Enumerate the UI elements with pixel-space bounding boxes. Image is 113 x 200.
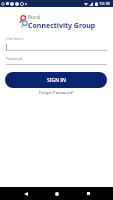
button[interactable]: Back bbox=[19, 187, 32, 200]
button[interactable]: Forgot Password? bbox=[37, 89, 76, 97]
staticText: Rural bbox=[28, 14, 41, 21]
staticText: SIGN IN bbox=[47, 77, 66, 84]
button[interactable]: Recent apps bbox=[82, 187, 95, 200]
staticText: Connectivity Group bbox=[28, 21, 96, 31]
button[interactable] bbox=[6, 58, 107, 65]
staticText: Password bbox=[6, 56, 23, 61]
button[interactable] bbox=[6, 42, 107, 51]
button[interactable]: SIGN IN bbox=[5, 72, 107, 88]
staticText: 10:18 bbox=[99, 1, 110, 7]
staticText: Username bbox=[6, 36, 24, 41]
button[interactable]: Home bbox=[50, 187, 63, 200]
